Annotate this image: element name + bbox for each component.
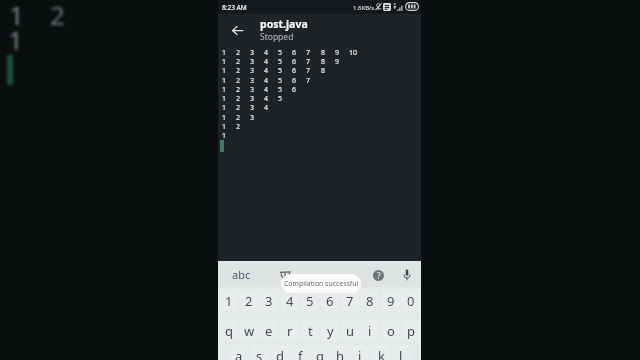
button[interactable]: 7 <box>340 289 360 313</box>
staticText: l <box>399 347 403 360</box>
button[interactable]: k <box>371 344 391 360</box>
button[interactable]: 4 <box>280 289 300 313</box>
staticText: 7 <box>306 76 311 86</box>
staticText: a <box>235 347 243 360</box>
staticText: 1 <box>222 122 227 132</box>
button[interactable]: y <box>320 319 340 343</box>
staticText: 2 <box>236 48 241 58</box>
staticText: o <box>387 322 395 340</box>
staticText: 2 <box>245 292 253 310</box>
staticText: 4 <box>264 94 269 104</box>
button[interactable]: Help <box>366 263 390 287</box>
staticText: w <box>244 322 255 340</box>
staticText: 2 <box>236 66 241 76</box>
staticText: u <box>346 322 355 340</box>
staticText: 3 <box>265 292 273 310</box>
button[interactable]: d <box>270 344 290 360</box>
button[interactable]: i <box>360 319 380 343</box>
button[interactable]: e <box>259 319 279 343</box>
staticText: 8:23 AM <box>222 3 247 12</box>
button[interactable]: Voice input <box>395 263 419 287</box>
button[interactable]: p <box>401 319 421 343</box>
button[interactable]: 9 <box>381 289 401 313</box>
staticText: 9 <box>335 48 340 58</box>
button[interactable]: 3 <box>259 289 279 313</box>
staticText: s <box>256 347 263 360</box>
staticText: p <box>407 322 415 340</box>
button[interactable]: a <box>229 344 249 360</box>
button[interactable]: Switch language <box>265 261 305 288</box>
staticText: 6 <box>292 85 297 95</box>
button[interactable]: h <box>330 344 350 360</box>
button[interactable]: Back <box>223 16 251 44</box>
staticText: 1 <box>9 0 24 32</box>
button[interactable]: w <box>239 319 259 343</box>
staticText: 0 <box>407 292 415 310</box>
button[interactable]: 5 <box>300 289 320 313</box>
staticText: 6 <box>326 292 334 310</box>
staticText: 1 <box>225 292 233 310</box>
staticText: 4 <box>264 103 269 113</box>
button[interactable]: 0 <box>401 289 421 313</box>
staticText: t <box>308 322 313 340</box>
staticText: 5 <box>306 292 314 310</box>
staticText: 1 <box>222 103 227 113</box>
staticText: Stopped <box>260 31 294 43</box>
staticText: 2 <box>236 103 241 113</box>
button[interactable]: t <box>300 319 320 343</box>
staticText: 5 <box>278 57 283 67</box>
staticText: 2 <box>236 85 241 95</box>
staticText: 8 <box>366 292 374 310</box>
staticText: 3 <box>250 66 255 76</box>
staticText: k <box>378 347 385 360</box>
button[interactable]: 6 <box>320 289 340 313</box>
button[interactable]: l <box>391 344 411 360</box>
button[interactable]: 8 <box>360 289 380 313</box>
staticText: 7 <box>306 66 311 76</box>
staticText: 9 <box>387 292 395 310</box>
button[interactable]: q <box>219 319 239 343</box>
staticText: h <box>336 347 345 360</box>
staticText: 2 <box>236 94 241 104</box>
staticText: 3 <box>250 76 255 86</box>
staticText: 1 <box>222 85 227 95</box>
staticText: 5 <box>278 85 283 95</box>
staticText: 5 <box>278 66 283 76</box>
staticText: e <box>265 322 273 340</box>
staticText: 3 <box>250 94 255 104</box>
staticText: abc <box>232 267 251 282</box>
button[interactable]: 1 <box>219 289 239 313</box>
button[interactable]: r <box>280 319 300 343</box>
staticText: ? <box>377 270 381 281</box>
staticText: q <box>225 322 233 340</box>
staticText: 7 <box>306 57 311 67</box>
staticText: 3 <box>250 103 255 113</box>
button[interactable]: o <box>381 319 401 343</box>
staticText: 1 <box>222 57 227 67</box>
button[interactable]: f <box>290 344 310 360</box>
staticText: 2 <box>236 122 241 132</box>
staticText: 2 <box>236 57 241 67</box>
button[interactable]: g <box>310 344 330 360</box>
staticText: f <box>298 347 303 360</box>
staticText: 4 <box>264 85 269 95</box>
staticText: 7 <box>346 292 354 310</box>
staticText: 2 <box>236 113 241 123</box>
staticText: 10 <box>349 48 358 58</box>
button[interactable]: 2 <box>239 289 259 313</box>
button[interactable]: abc <box>220 261 262 288</box>
button[interactable]: s <box>249 344 269 360</box>
staticText: 3 <box>250 113 255 123</box>
staticText: 4 <box>264 48 269 58</box>
staticText: 4 <box>264 76 269 86</box>
staticText: 4 <box>286 292 294 310</box>
button[interactable]: u <box>340 319 360 343</box>
staticText: 1 <box>222 66 227 76</box>
staticText: 8 <box>321 57 326 67</box>
staticText: 5 <box>278 94 283 104</box>
staticText: 1 <box>222 76 227 86</box>
staticText: r <box>287 322 293 340</box>
staticText: 2 <box>50 0 65 32</box>
staticText: 4 <box>264 57 269 67</box>
button[interactable]: j <box>350 344 370 360</box>
